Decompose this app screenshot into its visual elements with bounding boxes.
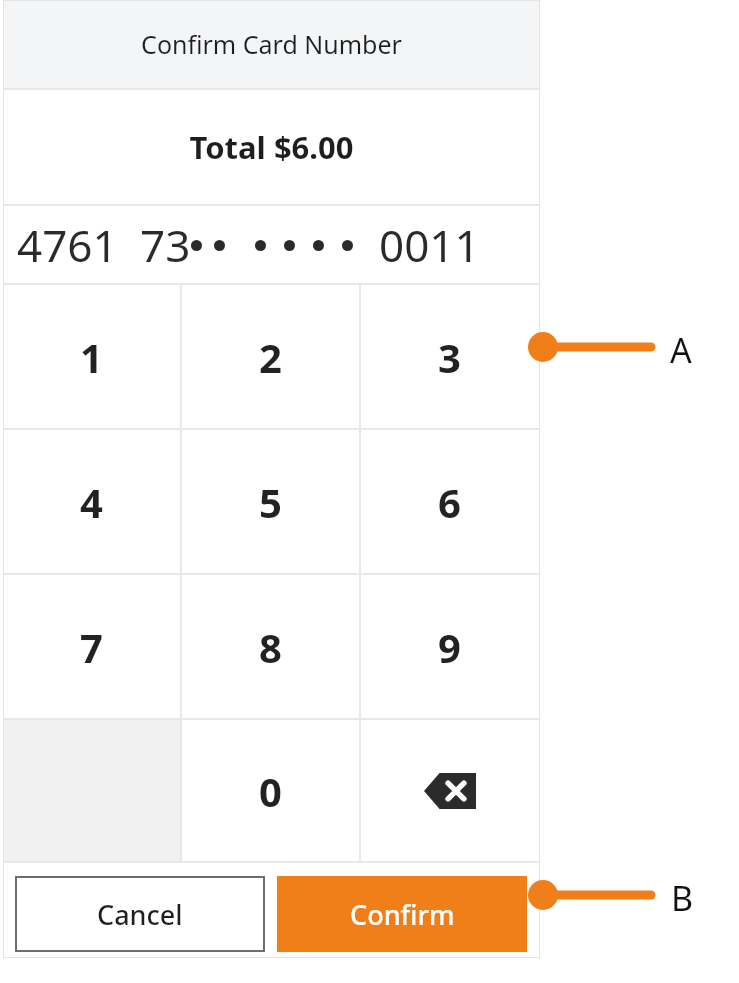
button[interactable]: 5 xyxy=(182,430,359,573)
button[interactable]: Cancel xyxy=(15,876,265,952)
button[interactable]: 0 xyxy=(182,720,359,861)
staticText: 9 xyxy=(438,620,461,674)
staticText: 7 xyxy=(80,620,103,674)
staticText: B xyxy=(671,875,694,921)
staticText: Cancel xyxy=(97,896,183,933)
button[interactable]: 9 xyxy=(361,575,538,718)
staticText: Total $6.00 xyxy=(189,126,354,168)
button[interactable]: Backspace xyxy=(361,720,538,861)
staticText: 6 xyxy=(438,475,461,529)
staticText: 8 xyxy=(259,620,282,674)
button[interactable]: 6 xyxy=(361,430,538,573)
button[interactable]: 3 xyxy=(361,285,538,428)
staticText: 73 xyxy=(140,215,191,275)
button[interactable]: 8 xyxy=(182,575,359,718)
staticText: A xyxy=(670,327,692,373)
staticText: 1 xyxy=(80,330,103,384)
button[interactable]: 7 xyxy=(3,575,180,718)
staticText: Confirm Card Number xyxy=(141,27,402,61)
button[interactable]: 1 xyxy=(3,285,180,428)
staticText: 3 xyxy=(438,330,461,384)
button[interactable]: Confirm xyxy=(277,876,527,952)
staticText: 4 xyxy=(80,475,103,529)
button[interactable]: 4 xyxy=(3,430,180,573)
staticText: Confirm xyxy=(350,896,455,933)
staticText: 0011 xyxy=(379,215,480,275)
staticText: 5 xyxy=(259,475,282,529)
staticText: 4761 xyxy=(17,215,118,275)
staticText: 2 xyxy=(259,330,282,384)
button[interactable]: 2 xyxy=(182,285,359,428)
staticText: 0 xyxy=(259,764,282,818)
